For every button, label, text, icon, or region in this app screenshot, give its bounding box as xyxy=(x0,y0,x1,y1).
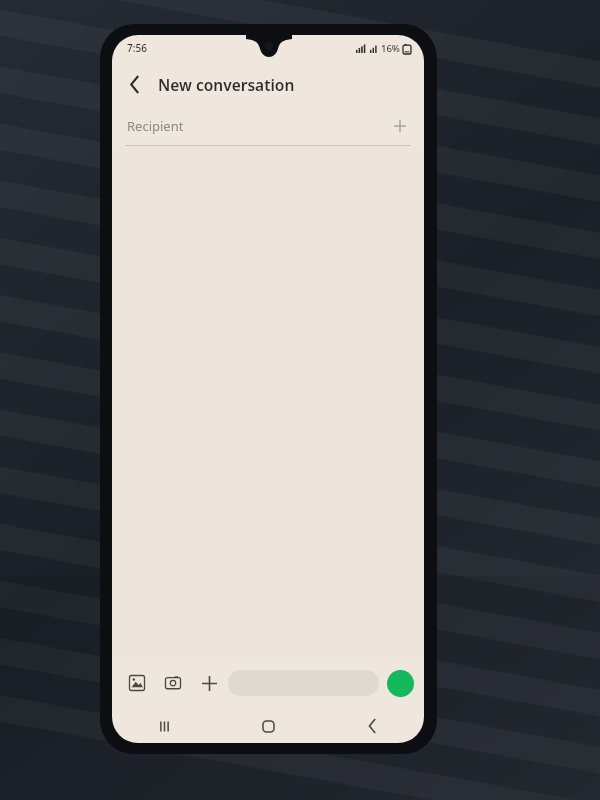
button[interactable]: Home xyxy=(216,709,320,743)
button[interactable]: Back xyxy=(118,67,152,101)
button[interactable]: Camera xyxy=(158,668,188,698)
staticText: New conversation xyxy=(158,74,295,95)
button[interactable]: Recents xyxy=(112,709,216,743)
button[interactable]: Send xyxy=(387,670,414,697)
button[interactable]: Add recipient xyxy=(386,112,414,140)
staticText: 16% xyxy=(381,42,400,55)
staticText: Recipient xyxy=(127,117,386,135)
staticText: 7:56 xyxy=(127,41,147,55)
button[interactable]: Gallery xyxy=(122,668,152,698)
button[interactable]: Back xyxy=(320,709,424,743)
button[interactable]: More options xyxy=(194,668,224,698)
